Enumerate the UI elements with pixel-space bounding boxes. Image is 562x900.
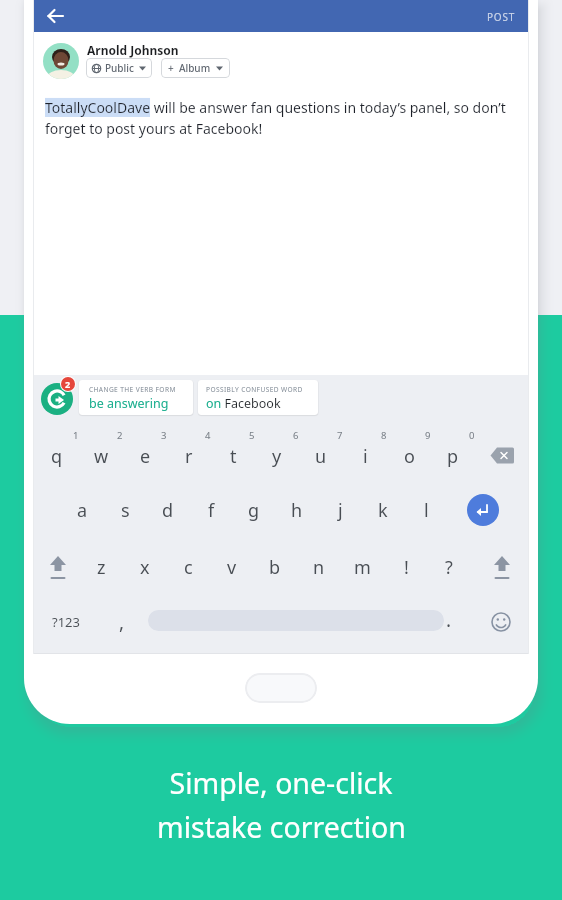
button[interactable]: , bbox=[100, 605, 144, 639]
staticText: c bbox=[184, 555, 193, 580]
button[interactable]: t bbox=[211, 439, 255, 473]
staticText: v bbox=[227, 555, 237, 580]
button[interactable]: h bbox=[275, 493, 319, 527]
staticText: Simple, one-click bbox=[169, 764, 393, 803]
staticText: l bbox=[424, 498, 429, 523]
staticText: 6 bbox=[293, 429, 299, 442]
button[interactable]: c bbox=[166, 550, 210, 584]
staticText: Arnold Johnson bbox=[87, 42, 179, 58]
button[interactable]: Public bbox=[86, 58, 152, 78]
staticText: p bbox=[447, 444, 459, 469]
button[interactable]: s bbox=[103, 493, 147, 527]
staticText: 4 bbox=[205, 429, 211, 442]
button[interactable]: r bbox=[167, 439, 211, 473]
staticText: Public bbox=[105, 61, 134, 75]
staticText: j bbox=[338, 498, 343, 523]
button[interactable]: m bbox=[340, 550, 384, 584]
staticText: b bbox=[269, 555, 281, 580]
button[interactable]: w bbox=[79, 439, 123, 473]
button[interactable] bbox=[491, 556, 513, 582]
button[interactable]: z bbox=[79, 550, 123, 584]
button[interactable]: ? bbox=[427, 550, 471, 584]
staticText: i bbox=[363, 444, 368, 469]
staticText: s bbox=[121, 498, 130, 523]
button[interactable]: u bbox=[299, 439, 343, 473]
button[interactable]: g bbox=[232, 493, 276, 527]
staticText: k bbox=[378, 498, 388, 523]
staticText: o bbox=[404, 444, 415, 469]
staticText: on Facebook bbox=[206, 395, 281, 412]
button[interactable] bbox=[245, 673, 317, 703]
staticText: mistake correction bbox=[157, 808, 406, 847]
staticText: 2 bbox=[65, 378, 71, 390]
button[interactable] bbox=[41, 383, 73, 415]
staticText: z bbox=[97, 555, 106, 580]
staticText: q bbox=[51, 444, 63, 469]
staticText: 8 bbox=[381, 429, 387, 442]
button[interactable]: y bbox=[255, 439, 299, 473]
staticText: g bbox=[248, 498, 260, 523]
button[interactable]: k bbox=[361, 493, 405, 527]
button[interactable]: CHANGE THE VERB FORM bbox=[79, 380, 193, 415]
staticText: 5 bbox=[249, 429, 255, 442]
button[interactable]: o bbox=[387, 439, 431, 473]
button[interactable]: q bbox=[35, 439, 79, 473]
button[interactable]: e bbox=[123, 439, 167, 473]
staticText: ! bbox=[404, 555, 409, 580]
button[interactable] bbox=[491, 612, 511, 632]
staticText: 9 bbox=[425, 429, 431, 442]
button[interactable]: + Album bbox=[161, 58, 230, 78]
staticText: 0 bbox=[469, 429, 475, 442]
button[interactable]: v bbox=[210, 550, 254, 584]
staticText: r bbox=[185, 444, 193, 469]
staticText: e bbox=[140, 444, 151, 469]
staticText: w bbox=[94, 444, 109, 469]
staticText: y bbox=[272, 444, 282, 469]
button[interactable]: ?123 bbox=[44, 605, 88, 639]
button[interactable] bbox=[47, 9, 65, 23]
staticText: , bbox=[119, 609, 125, 635]
button[interactable]: f bbox=[189, 493, 233, 527]
button[interactable] bbox=[47, 556, 69, 582]
staticText: h bbox=[291, 498, 303, 523]
staticText: a bbox=[77, 498, 88, 523]
staticText: + Album bbox=[168, 61, 211, 75]
button[interactable]: x bbox=[123, 550, 167, 584]
staticText: be answering bbox=[89, 395, 169, 412]
staticText: forget to post yours at Facebook! bbox=[45, 119, 263, 138]
button[interactable]: a bbox=[60, 493, 104, 527]
button[interactable]: ! bbox=[384, 550, 428, 584]
staticText: CHANGE THE VERB FORM bbox=[89, 385, 176, 394]
staticText: m bbox=[354, 555, 371, 580]
staticText: ? bbox=[445, 555, 453, 580]
staticText: 3 bbox=[161, 429, 167, 442]
staticText: 7 bbox=[337, 429, 343, 442]
button[interactable]: l bbox=[404, 493, 448, 527]
button[interactable]: n bbox=[297, 550, 341, 584]
staticText: d bbox=[162, 498, 174, 523]
staticText: ?123 bbox=[52, 613, 80, 631]
staticText: TotallyCoolDave will be answer fan quest… bbox=[45, 98, 506, 117]
button[interactable]: POST bbox=[487, 10, 516, 24]
staticText: n bbox=[313, 555, 325, 580]
staticText: t bbox=[230, 444, 237, 469]
button[interactable] bbox=[467, 494, 499, 526]
staticText: 1 bbox=[73, 429, 79, 442]
staticText: f bbox=[208, 498, 215, 523]
button[interactable]: j bbox=[318, 493, 362, 527]
button[interactable]: POSSIBLY CONFUSED WORD bbox=[198, 380, 318, 415]
staticText: x bbox=[140, 555, 150, 580]
staticText: . bbox=[446, 607, 452, 633]
button[interactable]: d bbox=[146, 493, 190, 527]
button[interactable]: b bbox=[253, 550, 297, 584]
button[interactable] bbox=[490, 447, 514, 464]
staticText: u bbox=[315, 444, 327, 469]
staticText: POSSIBLY CONFUSED WORD bbox=[206, 385, 303, 394]
button[interactable]: . bbox=[427, 603, 471, 637]
button[interactable]: i bbox=[343, 439, 387, 473]
staticText: 2 bbox=[117, 429, 123, 442]
button[interactable]: p bbox=[431, 439, 475, 473]
